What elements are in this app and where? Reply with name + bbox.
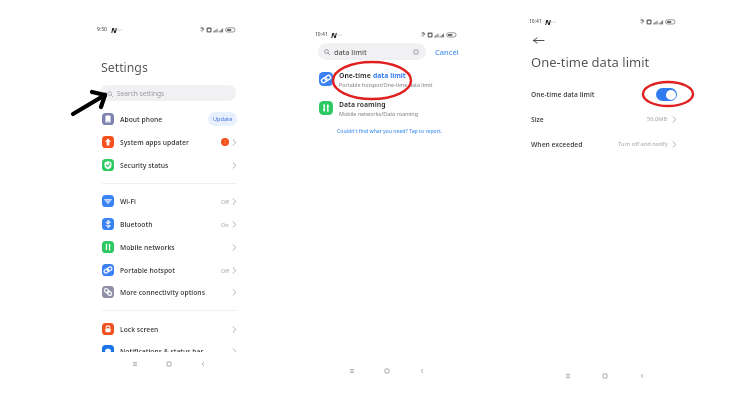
button[interactable]: One-time data limit toggle, on	[656, 88, 677, 101]
button[interactable]: Back	[416, 365, 428, 376]
staticText: N	[545, 17, 551, 27]
staticText: System apps updater	[120, 138, 189, 147]
staticText: Couldn't find what you need? Tap to repo…	[337, 127, 443, 134]
staticText: Wi-Fi	[120, 197, 136, 206]
button[interactable]: Home	[381, 365, 393, 376]
staticText: Data roaming	[339, 100, 386, 109]
button[interactable]: More connectivity options	[102, 281, 237, 303]
staticText: Bluetooth	[120, 220, 153, 229]
staticText: 9:50	[97, 26, 107, 33]
staticText: More connectivity options	[120, 288, 205, 297]
staticText: When exceeded	[531, 140, 583, 149]
staticText: Settings	[101, 59, 148, 76]
button[interactable]: About phone	[102, 108, 237, 130]
staticText: N	[331, 30, 337, 40]
staticText: Security status	[120, 161, 169, 170]
button[interactable]: Recents	[346, 365, 358, 376]
button[interactable]: Wi-Fi	[102, 190, 237, 212]
button[interactable]: Home	[163, 358, 175, 369]
staticText: Notifications & status bar	[120, 347, 204, 356]
staticText: On	[221, 221, 229, 228]
staticText: data limit	[334, 47, 367, 57]
button[interactable]: Size	[531, 108, 677, 130]
staticText: One-time data limit	[531, 53, 650, 71]
button[interactable]: Clear search	[411, 47, 421, 57]
button[interactable]: Recents	[129, 358, 141, 369]
button[interactable]: Bluetooth	[102, 213, 237, 235]
button[interactable]: Data roaming	[319, 97, 458, 119]
button[interactable]: One-time	[319, 68, 458, 90]
staticText: Lock screen	[120, 325, 159, 334]
staticText: Mobile networks	[120, 243, 175, 252]
button[interactable]: Notifications & status bar	[102, 340, 237, 362]
staticText: One-time	[339, 71, 373, 80]
button[interactable]: Back	[197, 358, 209, 369]
staticText: Turn off and notify	[618, 140, 668, 148]
staticText: Mobile networks/Data roaming	[339, 110, 419, 117]
button[interactable]: Cancel	[433, 45, 461, 59]
button[interactable]: System apps updater	[102, 131, 237, 153]
button[interactable]: Home	[599, 370, 611, 381]
button[interactable]: Recents	[562, 370, 574, 381]
staticText: Portable hotspot/One-time data limit	[339, 81, 433, 88]
button[interactable]: data limit	[318, 43, 426, 60]
button[interactable]: One-time data limit	[531, 83, 677, 105]
staticText: Off	[221, 267, 229, 274]
button[interactable]: Mobile networks	[102, 236, 237, 258]
staticText: One-time data limit	[531, 90, 595, 99]
staticText: Update	[213, 115, 233, 123]
button[interactable]: Security status	[102, 154, 237, 176]
staticText: data limit	[373, 71, 406, 80]
staticText: Off	[221, 198, 229, 205]
button[interactable]: Back	[531, 33, 545, 47]
staticText: Size	[531, 115, 544, 124]
staticText: 10:41	[315, 31, 328, 38]
button[interactable]: When exceeded	[531, 133, 677, 155]
button[interactable]: Search settings	[100, 85, 236, 101]
button[interactable]: Lock screen	[102, 318, 237, 340]
staticText: About phone	[120, 115, 163, 124]
staticText: Search settings	[117, 89, 165, 98]
staticText: Cancel	[435, 47, 459, 57]
staticText: 10:41	[529, 18, 542, 25]
button[interactable]: Back	[636, 370, 648, 381]
button[interactable]: Couldn't find what you need? Tap to repo…	[336, 126, 444, 135]
staticText: N	[111, 25, 117, 35]
staticText: 50.0MB	[647, 115, 668, 123]
staticText: Portable hotspot	[120, 266, 175, 275]
button[interactable]: Portable hotspot	[102, 259, 237, 281]
